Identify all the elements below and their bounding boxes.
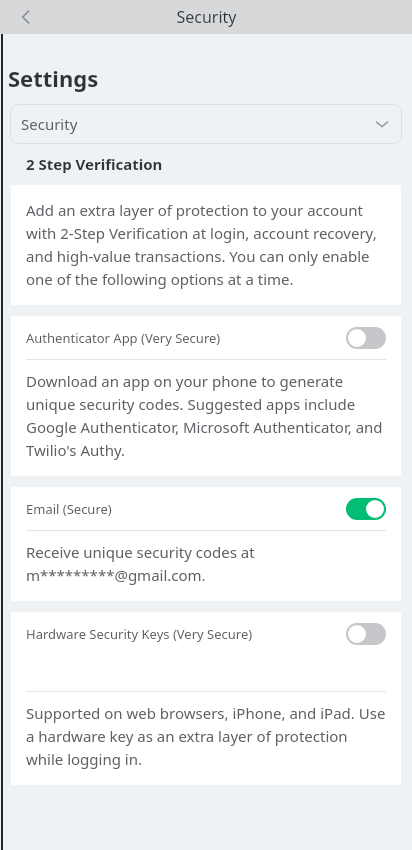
button[interactable]: Back: [12, 3, 40, 31]
staticText: Email (Secure): [26, 500, 346, 518]
staticText: Add an extra layer of protection to your…: [26, 200, 388, 289]
staticText: Hardware Security Keys (Very Secure): [26, 625, 346, 643]
staticText: Supported on web browsers, iPhone, and i…: [26, 703, 388, 769]
button[interactable]: Toggle off: [346, 623, 386, 645]
button[interactable]: Toggle on: [346, 498, 386, 520]
button[interactable]: Toggle off: [346, 327, 386, 349]
staticText: Settings: [8, 63, 99, 93]
button[interactable]: Security: [10, 104, 402, 144]
button[interactable]: Email (Secure): [11, 487, 401, 530]
staticText: Authenticator App (Very Secure): [26, 329, 346, 347]
button[interactable]: Authenticator App (Very Secure): [11, 316, 401, 359]
staticText: Receive unique security codes at m******…: [26, 542, 388, 585]
button[interactable]: Hardware Security Keys (Very Secure): [11, 612, 401, 655]
staticText: Security: [21, 114, 375, 134]
staticText: Download an app on your phone to generat…: [26, 371, 388, 460]
staticText: 2 Step Verification: [26, 154, 163, 174]
staticText: Security: [176, 6, 237, 28]
